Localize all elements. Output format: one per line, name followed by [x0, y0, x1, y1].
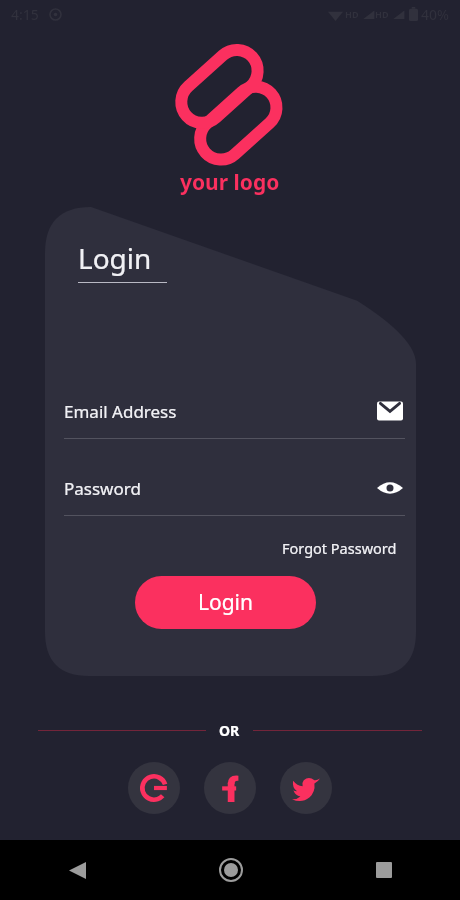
button[interactable]: Sign in with Facebook	[204, 762, 256, 814]
staticText: Password	[64, 477, 141, 500]
other: Show password	[375, 473, 405, 503]
button[interactable]: Login	[135, 576, 316, 629]
button[interactable]: Recent apps	[361, 847, 407, 893]
button[interactable]: Email Address	[64, 392, 405, 439]
staticText: your logo	[180, 168, 280, 197]
staticText: HD	[375, 8, 389, 20]
button[interactable]: Back	[54, 847, 100, 893]
staticText: 4:15	[11, 5, 39, 24]
staticText: Forgot Password	[282, 538, 397, 558]
button[interactable]: Password	[64, 469, 405, 516]
staticText: HD	[345, 8, 359, 20]
staticText: Login	[198, 588, 254, 617]
staticText: Email Address	[64, 400, 177, 423]
other: Email	[375, 396, 405, 426]
button[interactable]: Sign in with Google	[128, 762, 180, 814]
staticText: 40%	[421, 5, 449, 24]
button[interactable]: Forgot Password	[263, 534, 416, 562]
button[interactable]: Home	[208, 847, 254, 893]
button[interactable]: Sign in with Twitter	[280, 762, 332, 814]
staticText: Login	[78, 239, 152, 277]
staticText: OR	[219, 721, 240, 740]
